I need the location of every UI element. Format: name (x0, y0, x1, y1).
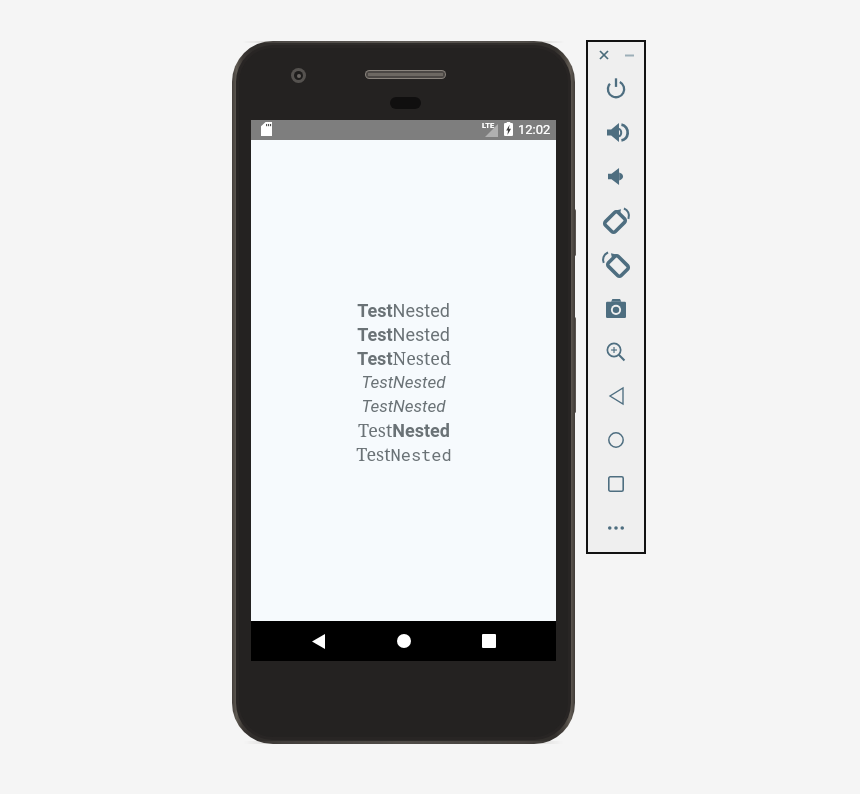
button[interactable]: Home (586, 418, 646, 462)
staticText: TestNested (358, 418, 450, 442)
button[interactable]: Overview (586, 462, 646, 506)
button[interactable]: Zoom (586, 330, 646, 374)
staticText: LTE (482, 121, 495, 130)
button[interactable]: Home (361, 621, 446, 661)
staticText: TestNested (357, 324, 450, 345)
button[interactable]: Power (586, 66, 646, 110)
button[interactable]: Volume down (586, 154, 646, 198)
button[interactable]: Rotate right (586, 242, 646, 286)
staticText: TestNested (357, 346, 451, 370)
button[interactable]: Close window (593, 44, 615, 66)
button[interactable]: More options (586, 506, 646, 550)
staticText: TestNested (361, 396, 446, 416)
button[interactable]: Minimize window (618, 44, 640, 66)
button[interactable]: Take screenshot (586, 286, 646, 330)
staticText: TestNested (357, 300, 450, 321)
button[interactable]: Recent apps (446, 621, 531, 661)
staticText: TestNested (356, 442, 452, 466)
button[interactable]: Back (586, 374, 646, 418)
button[interactable]: Back (276, 621, 361, 661)
button[interactable]: Rotate left (586, 198, 646, 242)
staticText: 12:02 (518, 122, 551, 137)
staticText: TestNested (361, 372, 446, 392)
button[interactable]: Volume up (586, 110, 646, 154)
